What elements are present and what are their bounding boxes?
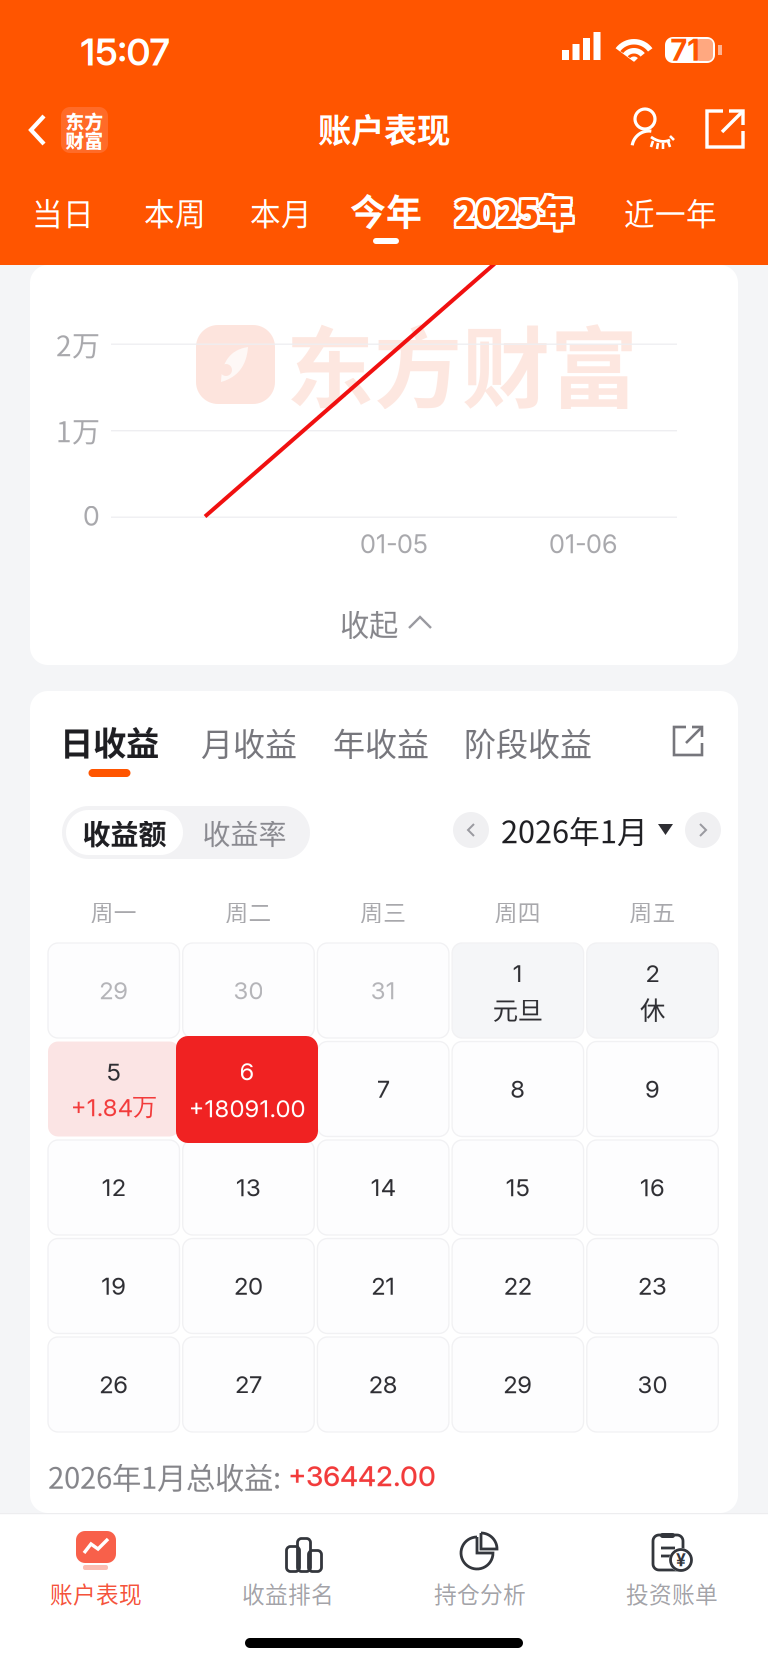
button[interactable]: 2026年1月 bbox=[501, 808, 673, 852]
button[interactable]: 27 bbox=[183, 1337, 314, 1432]
button[interactable]: 月收益 bbox=[201, 720, 297, 782]
staticText: 2万 bbox=[56, 324, 100, 364]
staticText: 30 bbox=[233, 976, 263, 1005]
button[interactable]: 22 bbox=[452, 1238, 584, 1333]
staticText: 周四 bbox=[495, 895, 541, 927]
staticText: 2025年 bbox=[452, 183, 571, 233]
staticText: 账户表现 bbox=[318, 104, 450, 152]
staticText: 2025年 bbox=[454, 188, 573, 239]
staticText: 2025年 bbox=[456, 188, 575, 239]
staticText: 阶段收益 bbox=[464, 719, 592, 765]
button[interactable]: 分享 bbox=[702, 106, 750, 154]
staticText: 26 bbox=[99, 1370, 128, 1399]
staticText: 1 bbox=[513, 959, 523, 988]
button[interactable]: 日收益 bbox=[60, 719, 159, 781]
staticText: 收益率 bbox=[202, 812, 286, 853]
staticText: 30 bbox=[637, 1370, 667, 1399]
staticText: 投资账单 bbox=[626, 1577, 718, 1609]
button[interactable]: 16 bbox=[587, 1140, 718, 1235]
button[interactable]: 26 bbox=[48, 1337, 179, 1432]
button[interactable]: 9 bbox=[587, 1041, 718, 1136]
button[interactable]: 14 bbox=[317, 1140, 449, 1235]
staticText: 东方 bbox=[65, 107, 103, 134]
button[interactable]: 19 bbox=[48, 1238, 179, 1333]
button[interactable]: 今年 bbox=[350, 188, 422, 248]
button[interactable]: 30 bbox=[183, 943, 314, 1038]
staticText: 21 bbox=[371, 1271, 395, 1300]
staticText: 周三 bbox=[360, 895, 406, 927]
staticText: 2025年 bbox=[455, 183, 574, 233]
staticText: 2026年1月 bbox=[501, 808, 648, 852]
button[interactable]: 下一月 bbox=[685, 812, 721, 848]
button[interactable]: 收起 bbox=[306, 596, 466, 650]
staticText: 22 bbox=[504, 1271, 532, 1300]
button[interactable]: 29 bbox=[48, 943, 179, 1038]
button[interactable]: 近一年 bbox=[624, 190, 717, 250]
staticText: 2025年 bbox=[458, 186, 577, 236]
staticText: 20 bbox=[234, 1271, 263, 1300]
button[interactable]: 2025年 bbox=[455, 189, 595, 249]
button[interactable]: 分享收益 bbox=[668, 721, 710, 763]
button[interactable]: 5 bbox=[48, 1041, 179, 1136]
button[interactable]: 28 bbox=[317, 1337, 449, 1432]
staticText: 23 bbox=[638, 1271, 667, 1300]
button[interactable]: 阶段收益 bbox=[464, 720, 592, 782]
staticText: 2025年 bbox=[455, 186, 574, 236]
staticText: 12 bbox=[102, 1173, 126, 1202]
staticText: 周一 bbox=[91, 895, 137, 927]
staticText: 收益额 bbox=[82, 812, 166, 853]
button[interactable]: 返回 bbox=[0, 92, 118, 168]
staticText: 财富 bbox=[65, 126, 103, 153]
button[interactable]: 1 bbox=[452, 943, 584, 1038]
staticText: 2025年 bbox=[458, 188, 577, 239]
button[interactable]: 29 bbox=[452, 1337, 584, 1432]
staticText: 9 bbox=[645, 1074, 660, 1103]
staticText: ¥ bbox=[676, 1549, 686, 1570]
staticText: 本周 bbox=[144, 190, 206, 234]
button[interactable]: 客服 bbox=[628, 106, 676, 154]
staticText: 01-05 bbox=[360, 529, 428, 559]
button[interactable]: 持仓分析 bbox=[384, 1531, 576, 1627]
button[interactable] bbox=[183, 1041, 314, 1136]
staticText: 收起 bbox=[340, 602, 398, 644]
button[interactable]: ¥ bbox=[576, 1531, 768, 1627]
staticText: 27 bbox=[235, 1370, 262, 1399]
button[interactable]: 2 bbox=[587, 943, 718, 1038]
staticText: 账户表现 bbox=[50, 1577, 142, 1609]
staticText: 今年 bbox=[350, 184, 422, 236]
staticText: 6 bbox=[239, 1057, 254, 1086]
staticText: 28 bbox=[369, 1370, 398, 1399]
staticText: 15 bbox=[506, 1173, 530, 1202]
staticText: 0 bbox=[83, 500, 100, 532]
button[interactable]: 收益额 bbox=[66, 810, 183, 855]
button[interactable]: 8 bbox=[452, 1041, 584, 1136]
button[interactable]: 收益率 bbox=[183, 810, 306, 855]
button[interactable]: 12 bbox=[48, 1140, 179, 1235]
button[interactable]: 当日 bbox=[32, 190, 94, 250]
staticText: 2025年 bbox=[452, 186, 571, 236]
staticText: 日收益 bbox=[60, 717, 159, 765]
button[interactable]: 30 bbox=[587, 1337, 718, 1432]
staticText: 2025年 bbox=[456, 186, 575, 236]
button[interactable]: 13 bbox=[183, 1140, 314, 1235]
button[interactable]: 21 bbox=[317, 1238, 449, 1333]
button[interactable]: 31 bbox=[317, 943, 449, 1038]
button[interactable]: 本周 bbox=[144, 190, 206, 250]
button[interactable]: 23 bbox=[587, 1238, 718, 1333]
button[interactable]: 7 bbox=[317, 1041, 449, 1136]
staticText: 元旦 bbox=[493, 990, 543, 1027]
button[interactable]: 6 bbox=[176, 1036, 318, 1143]
staticText: 本月 bbox=[250, 190, 312, 234]
staticText: 年收益 bbox=[333, 719, 429, 765]
staticText: 2025年 bbox=[454, 186, 573, 236]
staticText: 29 bbox=[99, 976, 128, 1005]
button[interactable]: 20 bbox=[183, 1238, 314, 1333]
button[interactable]: 年收益 bbox=[333, 720, 429, 782]
staticText: 8 bbox=[510, 1074, 525, 1103]
staticText: 2025年 bbox=[456, 183, 575, 233]
button[interactable]: 收益排名 bbox=[192, 1531, 384, 1627]
button[interactable]: 上一月 bbox=[453, 812, 489, 848]
button[interactable]: 账户表现 bbox=[0, 1531, 192, 1627]
button[interactable]: 本月 bbox=[250, 190, 312, 250]
button[interactable]: 15 bbox=[452, 1140, 584, 1235]
